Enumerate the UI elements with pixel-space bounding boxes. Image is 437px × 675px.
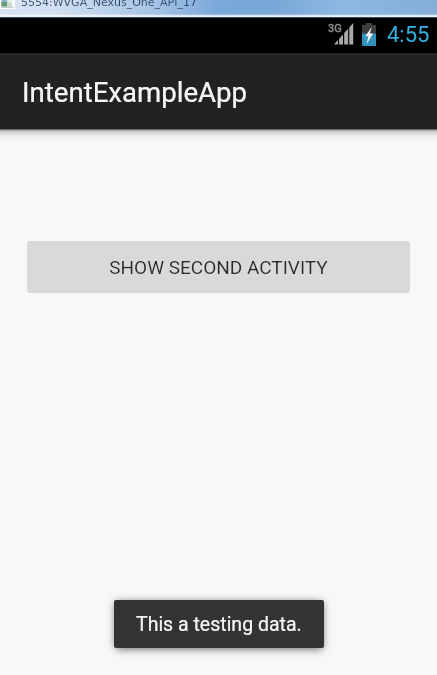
staticText: 5554:WVGA_Nexus_One_API_17 — [21, 0, 197, 9]
staticText: 3G — [328, 22, 342, 35]
staticText: This a testing data. — [136, 613, 302, 636]
staticText: SHOW SECOND ACTIVITY — [109, 256, 328, 278]
staticText: IntentExampleApp — [22, 76, 248, 108]
button[interactable]: SHOW SECOND ACTIVITY — [27, 241, 410, 293]
staticText: 4:55 — [387, 22, 430, 48]
